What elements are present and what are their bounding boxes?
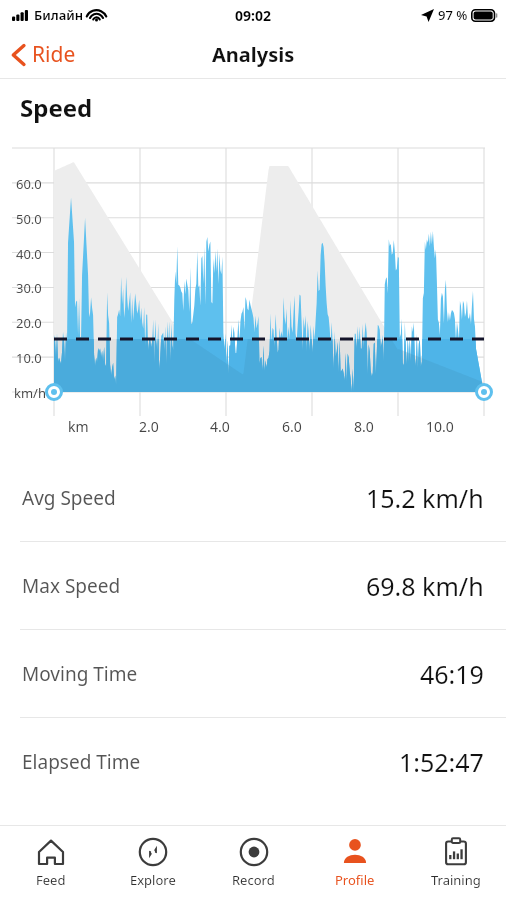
button[interactable]: Avg Speed	[0, 454, 506, 541]
staticText: 10.0	[426, 417, 454, 436]
staticText: 15.2 km/h	[366, 481, 484, 515]
staticText: Speed	[20, 91, 93, 124]
button[interactable]: Back	[0, 34, 90, 75]
staticText: Avg Speed	[22, 485, 116, 511]
staticText: Profile	[335, 871, 375, 889]
staticText: 50.0	[16, 210, 42, 228]
staticText: 46:19	[420, 657, 484, 691]
staticText: 09:02	[235, 6, 271, 25]
staticText: 97 %	[438, 6, 468, 24]
staticText: 6.0	[282, 417, 302, 436]
button[interactable]: Feed	[0, 826, 102, 900]
staticText: Feed	[36, 871, 66, 889]
staticText: 10.0	[16, 349, 42, 367]
staticText: 2.0	[139, 417, 159, 436]
staticText: 60.0	[16, 175, 42, 193]
staticText: Training	[431, 871, 481, 889]
staticText: Elapsed Time	[22, 749, 141, 775]
button[interactable]: Max Speed	[0, 542, 506, 629]
staticText: 1:52:47	[399, 745, 484, 779]
button[interactable]: Moving Time	[0, 630, 506, 717]
button[interactable]: Elapsed Time	[0, 718, 506, 805]
staticText: Moving Time	[22, 661, 138, 687]
button[interactable]: Training	[405, 826, 506, 900]
staticText: 8.0	[354, 417, 374, 436]
staticText: Explore	[130, 871, 176, 889]
staticText: km/h	[14, 384, 46, 402]
staticText: 69.8 km/h	[366, 569, 484, 603]
staticText: 40.0	[16, 245, 42, 263]
button[interactable]: Explore	[102, 826, 203, 900]
staticText: Analysis	[212, 41, 295, 68]
staticText: Билайн	[34, 6, 84, 24]
button[interactable]: Record	[203, 826, 304, 900]
staticText: 20.0	[16, 314, 42, 332]
staticText: Ride	[32, 40, 76, 69]
staticText: 30.0	[16, 279, 42, 297]
other: Back	[12, 44, 25, 66]
button[interactable]: Profile	[304, 826, 405, 900]
staticText: Record	[232, 871, 275, 889]
staticText: Max Speed	[22, 573, 121, 599]
staticText: km	[68, 417, 89, 436]
staticText: 4.0	[210, 417, 230, 436]
